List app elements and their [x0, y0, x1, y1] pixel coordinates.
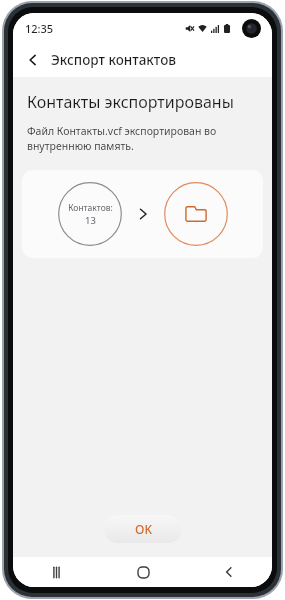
button[interactable]: Recents: [13, 557, 100, 587]
button[interactable]: Back: [19, 46, 47, 74]
button[interactable]: Контактов:: [22, 170, 263, 258]
staticText: Экспорт контактов: [51, 51, 176, 69]
staticText: 12:35: [25, 21, 54, 36]
button[interactable]: Back: [186, 557, 272, 587]
button[interactable]: OK: [104, 515, 182, 543]
button[interactable]: Home: [100, 557, 186, 587]
staticText: Контактов:: [68, 202, 113, 214]
staticText: Файл Контакты.vcf экспортирован во внутр…: [27, 124, 217, 153]
staticText: 13: [85, 214, 96, 227]
staticText: Контакты экспортированы: [27, 91, 234, 113]
staticText: OK: [135, 521, 152, 537]
